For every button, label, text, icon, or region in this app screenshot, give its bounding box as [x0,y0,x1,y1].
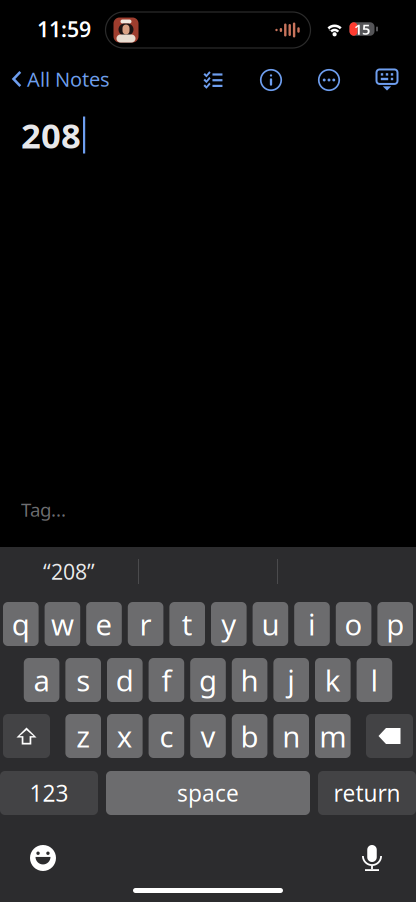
button[interactable]: return [318,771,416,815]
button[interactable]: w [45,602,80,646]
staticText: l [370,660,378,699]
button[interactable]: f [149,658,184,702]
staticText: return [333,778,400,808]
button[interactable]: Info [242,52,300,100]
button[interactable]: u [253,602,288,646]
button[interactable]: t [169,602,205,646]
staticText: Tag... [21,497,66,522]
staticText: e [95,604,112,643]
staticText: n [282,716,300,755]
button[interactable]: z [65,714,101,758]
button[interactable]: b [232,714,267,758]
staticText: 208 [21,112,81,158]
button[interactable]: Shift [3,714,50,758]
button[interactable]: l [357,658,392,702]
staticText: q [12,604,30,643]
button[interactable]: s [65,658,101,702]
staticText: h [241,660,259,699]
staticText: p [386,604,404,643]
staticText: space [177,778,239,808]
button[interactable]: a [24,658,59,702]
staticText: j [287,660,295,699]
button[interactable]: Delete [366,714,413,758]
button[interactable]: Emoji [21,836,65,880]
staticText: 11:59 [37,15,91,43]
button[interactable]: space [106,771,310,815]
staticText: i [308,604,316,643]
staticText: f [161,660,171,699]
button[interactable]: n [273,714,309,758]
button[interactable]: d [107,658,143,702]
staticText: 15 [354,19,370,39]
button[interactable]: m [315,714,351,758]
staticText: r [140,604,152,643]
staticText: w [51,604,74,643]
button[interactable]: y [211,602,247,646]
button[interactable]: o [336,602,371,646]
staticText: k [325,660,341,699]
staticText: u [261,604,279,643]
staticText: “208” [43,557,95,586]
staticText: All Notes [27,66,110,92]
button[interactable]: v [190,714,226,758]
staticText: c [159,716,173,755]
button[interactable]: g [190,658,226,702]
staticText: d [116,660,134,699]
staticText: v [200,716,215,755]
button[interactable]: 123 [0,771,98,815]
staticText: a [34,660,50,699]
staticText: z [76,716,90,755]
button[interactable]: r [128,602,163,646]
button[interactable]: More [300,52,358,100]
button[interactable]: x [107,714,143,758]
button[interactable]: p [377,602,413,646]
button[interactable]: Hide Keyboard [358,52,416,100]
button[interactable]: i [294,602,330,646]
button[interactable]: Dictate [350,836,394,880]
button[interactable]: k [315,658,351,702]
staticText: g [199,660,217,699]
staticText: o [345,604,363,643]
staticText: y [221,604,236,643]
button[interactable]: Checklist [184,52,242,100]
button[interactable]: c [149,714,184,758]
staticText: s [76,660,90,699]
button[interactable]: e [86,602,122,646]
staticText: m [319,716,346,755]
staticText: x [117,716,133,755]
button[interactable]: j [273,658,309,702]
button[interactable]: q [3,602,39,646]
button[interactable]: h [232,658,267,702]
staticText: b [241,716,259,755]
staticText: t [182,604,193,643]
staticText: 123 [29,778,68,808]
button[interactable]: All Notes [0,56,110,96]
